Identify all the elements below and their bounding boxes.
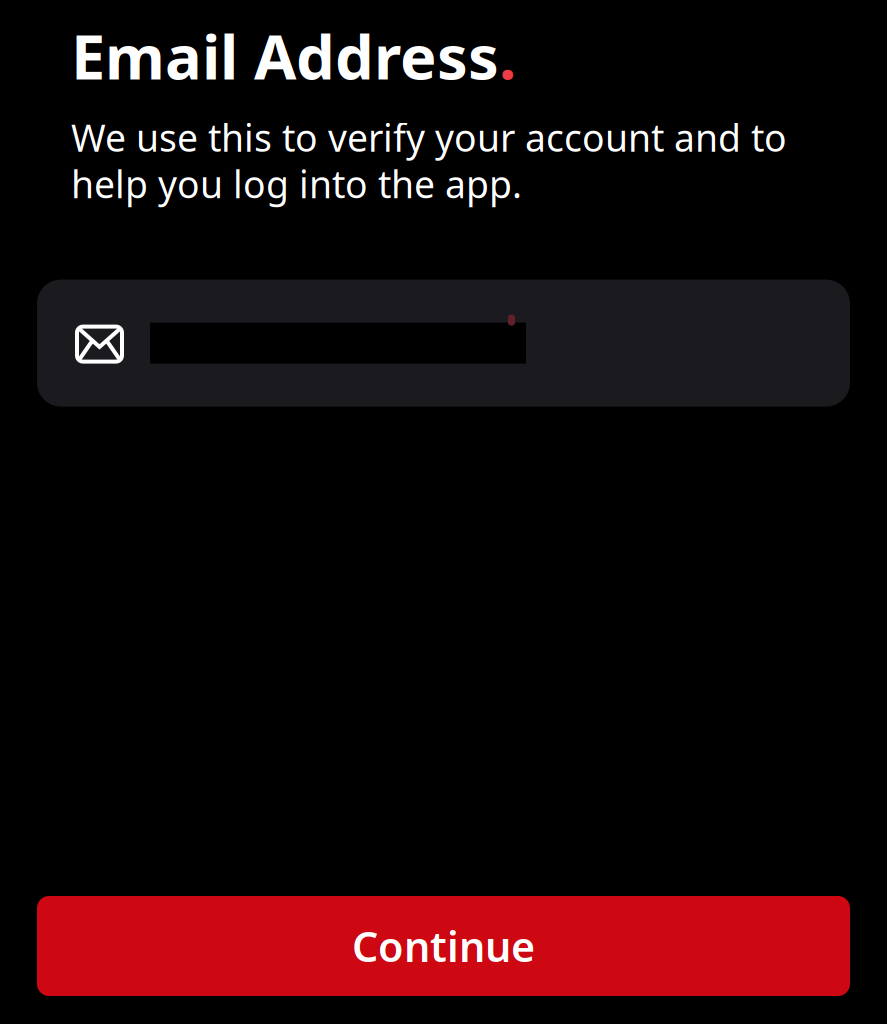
staticText: . xyxy=(499,15,516,96)
staticText: Email Address xyxy=(71,15,499,96)
button[interactable]: Email address field xyxy=(37,280,850,407)
staticText: Continue xyxy=(352,919,535,973)
staticText: We use this to verify your account and t… xyxy=(71,112,787,209)
button[interactable]: Continue xyxy=(37,896,850,996)
